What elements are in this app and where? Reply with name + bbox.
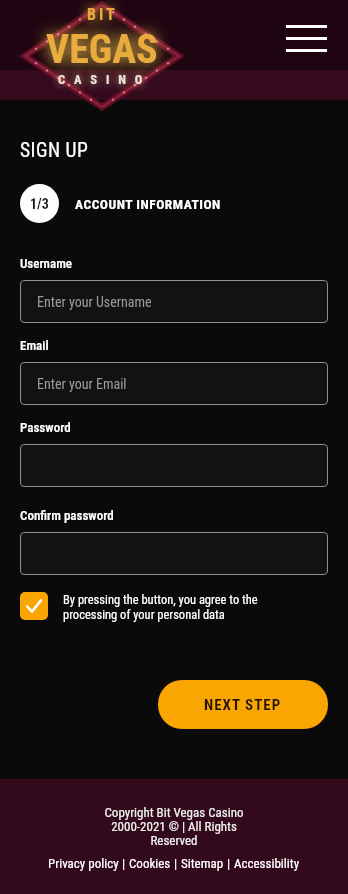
staticText: C A S I N O [58,72,146,87]
button[interactable] [20,592,48,620]
staticText: Enter your Email [37,376,127,392]
button[interactable]: Cookies [129,856,171,871]
staticText: By pressing the button, you agree to the… [63,592,258,622]
staticText: Password [20,420,71,435]
staticText: Enter your Username [37,294,152,310]
staticText: SIGN UP [20,139,89,162]
button[interactable] [20,532,328,575]
staticText: NEXT STEP [204,696,282,714]
button[interactable]: Enter your Username [20,280,328,323]
button[interactable]: Privacy policy [48,856,119,871]
button[interactable]: Accessibility [234,856,300,871]
staticText: Username [20,256,73,271]
staticText: Email [20,338,49,353]
staticText: Copyright Bit Vegas Casino 2000-2021 © |… [104,805,244,848]
staticText: BIT [87,5,118,24]
staticText: Confirm password [20,508,114,523]
button[interactable]: Enter your Email [20,362,328,405]
staticText: | [171,856,181,871]
button[interactable] [20,444,328,487]
staticText: | [119,856,129,871]
staticText: ACCOUNT INFORMATION [75,196,221,212]
staticText: | [224,856,234,871]
staticText: 1/3 [30,196,49,212]
staticText: VEGAS [46,26,158,73]
button[interactable] [281,20,332,57]
button[interactable]: NEXT STEP [158,680,328,729]
button[interactable]: Sitemap [181,856,224,871]
